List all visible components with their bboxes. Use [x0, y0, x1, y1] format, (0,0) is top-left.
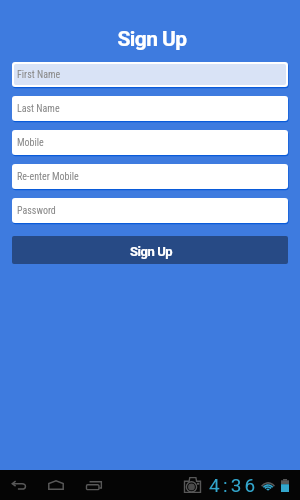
staticText: Re-enter Mobile: [17, 171, 79, 183]
staticText: Password: [17, 205, 56, 217]
button[interactable]: Re-enter Mobile: [14, 166, 286, 187]
button[interactable]: Password: [14, 200, 286, 221]
staticText: First Name: [17, 69, 61, 81]
button[interactable]: Recent apps: [82, 473, 106, 497]
staticText: Mobile: [17, 137, 44, 149]
staticText: Last Name: [17, 103, 60, 115]
staticText: 4:36: [209, 474, 259, 496]
button[interactable]: Home: [44, 473, 68, 497]
button[interactable]: Mobile: [14, 132, 286, 153]
button[interactable]: Back: [7, 473, 31, 497]
button[interactable]: First Name: [14, 64, 286, 85]
staticText: Sign Up: [130, 244, 173, 259]
button[interactable]: Sign Up: [12, 236, 288, 264]
staticText: Sign Up: [2, 27, 300, 52]
button[interactable]: Last Name: [14, 98, 286, 119]
